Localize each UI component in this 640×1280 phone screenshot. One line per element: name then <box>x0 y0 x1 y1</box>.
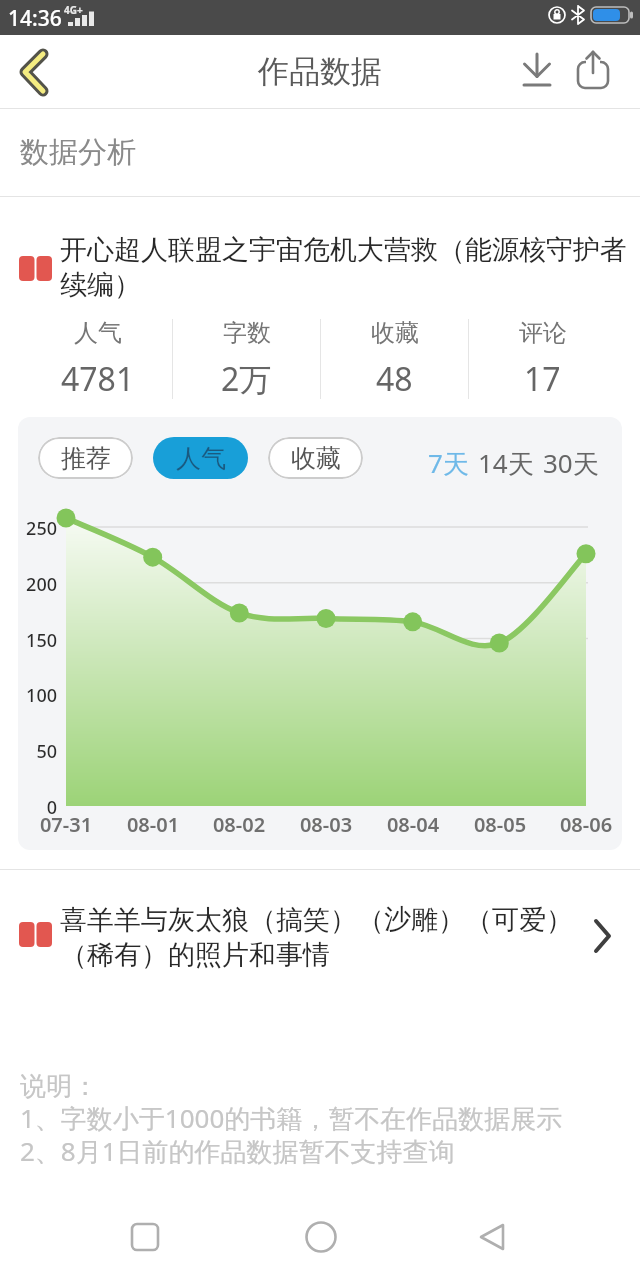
button[interactable]: 人气 <box>24 318 172 400</box>
button[interactable]: 推荐 <box>38 437 133 479</box>
staticText: 08-01 <box>113 811 193 838</box>
button[interactable]: 字数 <box>173 318 320 400</box>
staticText: 收藏 <box>291 443 341 474</box>
staticText: 续编） <box>60 268 141 302</box>
staticText: 08-06 <box>546 811 622 838</box>
staticText: 人气 <box>74 318 122 348</box>
staticText: 4G+ <box>64 3 83 17</box>
staticText: 推荐 <box>61 443 111 474</box>
staticText: （稀有）的照片和事情 <box>60 938 330 972</box>
staticText: 50 <box>18 739 57 764</box>
staticText: 评论 <box>519 318 567 348</box>
staticText: 开心超人联盟之宇宙危机大营救（能源核守护者 <box>60 233 627 267</box>
staticText: 08-04 <box>373 811 453 838</box>
button[interactable]: 喜羊羊与灰太狼（搞笑）（沙雕）（可爱） <box>0 885 640 990</box>
staticText: 收藏 <box>371 318 419 348</box>
staticText: 48 <box>376 357 413 400</box>
staticText: 07-31 <box>26 811 106 838</box>
staticText: 4781 <box>61 357 135 400</box>
staticText: 作品数据 <box>0 52 640 91</box>
staticText: 2万 <box>221 357 272 400</box>
staticText: 人气 <box>176 443 226 474</box>
staticText: 14:36 <box>8 4 62 33</box>
button[interactable]: 7天 <box>428 445 469 481</box>
staticText: 字数 <box>223 318 271 348</box>
button[interactable]: 14天 <box>478 445 534 481</box>
staticText: 100 <box>18 683 57 708</box>
staticText: 0 <box>18 795 57 820</box>
staticText: 17 <box>524 357 561 400</box>
button[interactable] <box>0 35 70 108</box>
button[interactable] <box>214 1196 427 1280</box>
button[interactable]: 开心超人联盟之宇宙危机大营救（能源核守护者 <box>0 210 640 310</box>
staticText: 250 <box>18 516 57 541</box>
button[interactable] <box>0 1196 214 1280</box>
staticText: 08-02 <box>199 811 279 838</box>
button[interactable]: 30天 <box>543 445 599 481</box>
button[interactable]: 人气 <box>153 437 248 479</box>
button[interactable]: 收藏 <box>268 437 363 479</box>
button[interactable]: 收藏 <box>321 318 468 400</box>
staticText: 喜羊羊与灰太狼（搞笑）（沙雕）（可爱） <box>60 903 573 937</box>
staticText: 08-05 <box>460 811 540 838</box>
staticText: 150 <box>18 628 57 653</box>
staticText: 说明： 1、字数小于1000的书籍，暂不在作品数据展示 2、8月1日前的作品数据… <box>20 1070 563 1169</box>
button[interactable] <box>510 35 640 108</box>
staticText: 08-03 <box>286 811 366 838</box>
button[interactable]: 评论 <box>469 318 616 400</box>
staticText: 200 <box>18 572 57 597</box>
button[interactable] <box>427 1196 640 1280</box>
staticText: 数据分析 <box>20 134 136 171</box>
